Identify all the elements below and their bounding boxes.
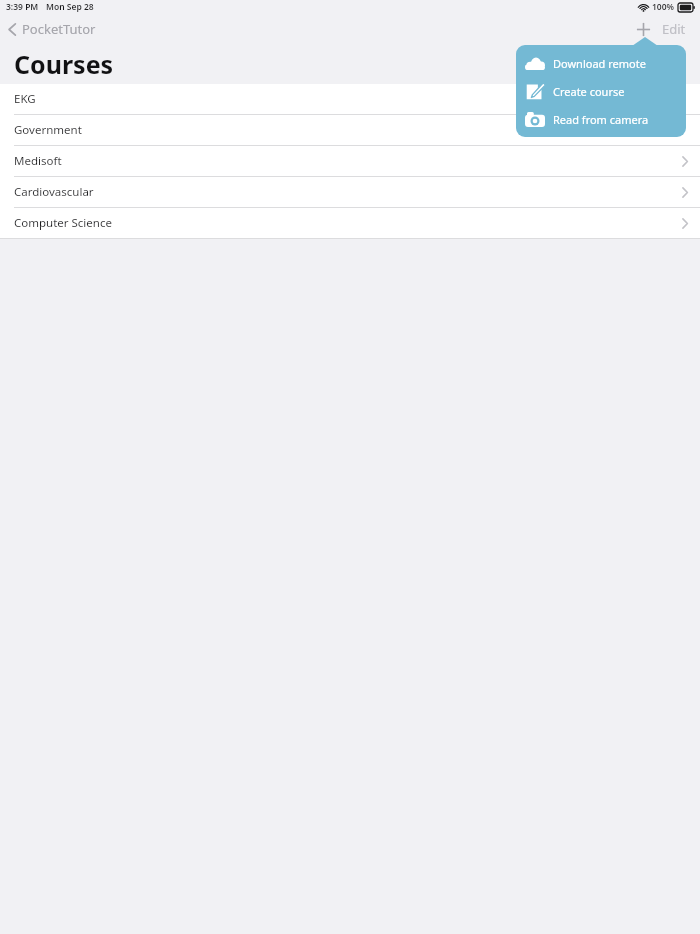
staticText: PocketTutor — [22, 20, 96, 38]
staticText: Read from camera — [553, 112, 649, 127]
button[interactable]: PocketTutor — [0, 16, 104, 42]
button[interactable]: Download remote course — [516, 49, 686, 77]
button[interactable]: Computer Science — [0, 208, 700, 238]
button[interactable]: Read from camera — [516, 105, 686, 133]
button[interactable]: Edit — [656, 16, 692, 42]
button[interactable]: Medisoft — [0, 146, 700, 176]
staticText: Create course — [553, 84, 625, 99]
staticText: Download remote course — [553, 56, 680, 71]
button[interactable]: Create course — [516, 77, 686, 105]
staticText: Computer Science — [14, 215, 112, 231]
staticText: Cardiovascular — [14, 184, 94, 200]
staticText: Government — [14, 122, 82, 138]
staticText: Mon Sep 28 — [46, 1, 94, 13]
staticText: Courses — [14, 47, 114, 81]
button[interactable]: Add course — [630, 16, 656, 42]
staticText: Medisoft — [14, 153, 62, 169]
button[interactable]: EKG — [0, 84, 700, 114]
staticText: Edit — [662, 20, 686, 38]
staticText: 100% — [652, 1, 675, 13]
staticText: 3:39 PM — [6, 1, 39, 13]
button[interactable]: Cardiovascular — [0, 177, 700, 207]
staticText: EKG — [14, 91, 36, 107]
button[interactable]: Government — [0, 115, 700, 145]
